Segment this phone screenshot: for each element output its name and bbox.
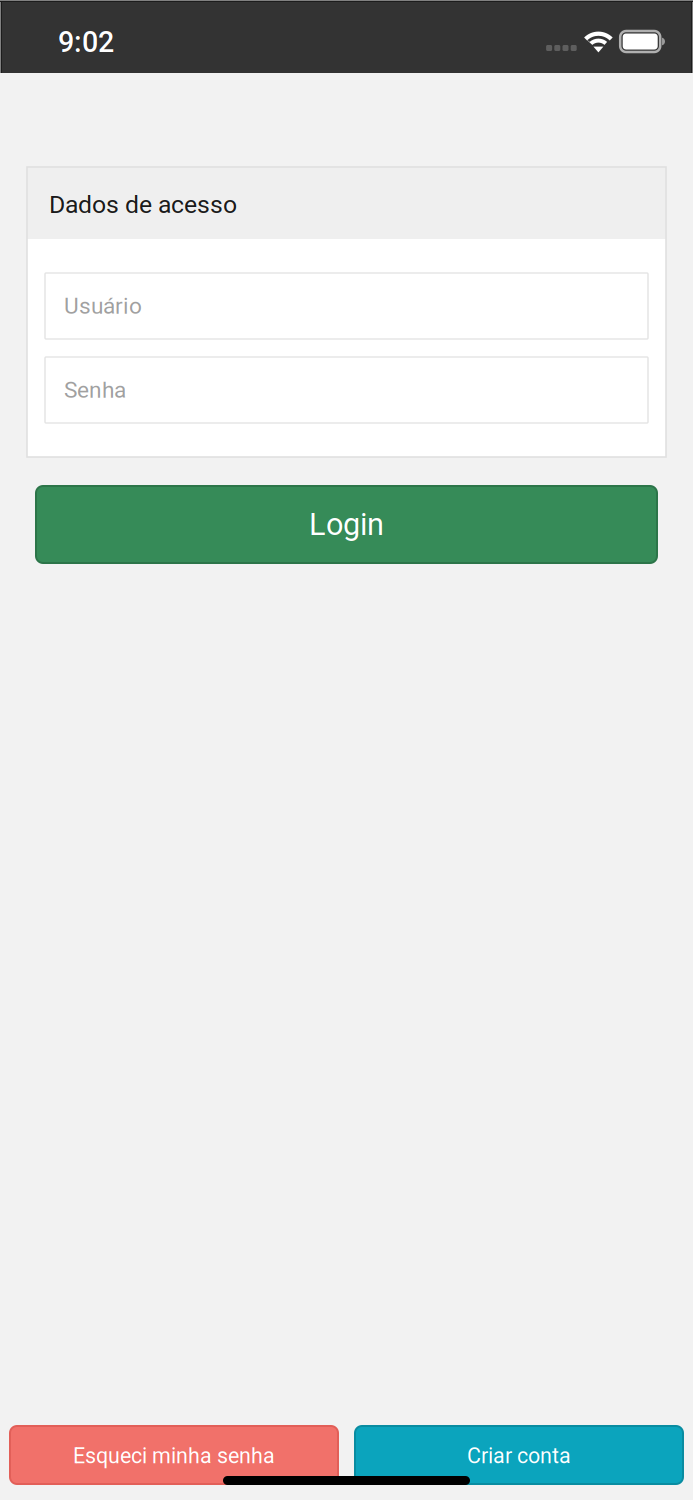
button[interactable]: Usuário xyxy=(45,273,648,339)
staticText: Usuário xyxy=(64,293,142,319)
button[interactable]: Esqueci minha senha xyxy=(10,1426,338,1484)
button[interactable]: Login xyxy=(36,486,657,563)
staticText: Dados de acesso xyxy=(49,190,237,219)
staticText: Criar conta xyxy=(467,1443,571,1469)
button[interactable]: Senha xyxy=(45,357,648,423)
button[interactable]: Criar conta xyxy=(355,1426,683,1484)
staticText: Login xyxy=(309,506,384,542)
staticText: 9:02 xyxy=(58,25,114,59)
staticText: Esqueci minha senha xyxy=(73,1443,275,1469)
staticText: Senha xyxy=(64,377,126,403)
